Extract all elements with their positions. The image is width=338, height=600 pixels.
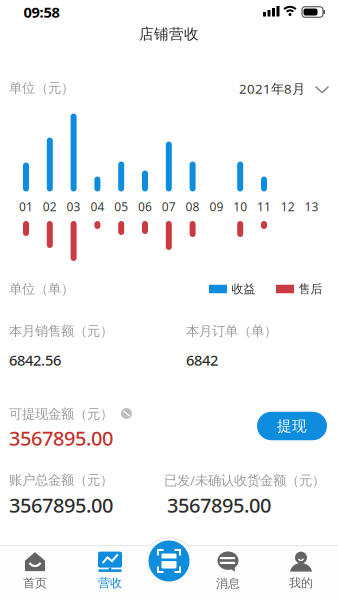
staticText: 6842	[186, 350, 218, 370]
staticText: 07	[162, 198, 176, 214]
staticText: 账户总金额（元）	[9, 472, 113, 488]
staticText: 本月订单（单）	[186, 323, 277, 339]
staticText: 可提现金额（元）	[9, 406, 113, 422]
staticText: 06	[138, 198, 152, 214]
staticText: 12	[281, 198, 295, 214]
staticText: 已发/未确认收货金额（元）	[164, 471, 325, 489]
staticText: 3567895.00	[167, 492, 271, 518]
button[interactable]: 首页	[5, 547, 65, 595]
button[interactable]: 2021年8月	[199, 80, 329, 97]
staticText: 09	[209, 198, 223, 214]
staticText: 本月销售额（元）	[9, 323, 113, 339]
button[interactable]: 消息	[198, 547, 258, 595]
button[interactable]: 我的	[271, 547, 331, 595]
staticText: 3567895.00	[9, 492, 113, 518]
button[interactable]: 隐藏金额	[121, 408, 132, 419]
staticText: 04	[90, 198, 104, 214]
staticText: 消息	[216, 576, 240, 591]
staticText: 首页	[23, 576, 47, 590]
staticText: 2021年8月	[239, 80, 305, 97]
staticText: 我的	[289, 576, 313, 590]
button[interactable]: 营收	[80, 547, 140, 595]
staticText: 单位（元）	[9, 80, 74, 96]
staticText: 单位（单）	[9, 281, 74, 297]
staticText: 02	[43, 198, 57, 214]
button[interactable]: 提现	[257, 412, 327, 440]
staticText: 03	[67, 198, 81, 214]
staticText: 11	[257, 198, 271, 214]
staticText: 05	[114, 198, 128, 214]
staticText: 售后	[298, 282, 322, 296]
staticText: 营收	[98, 576, 122, 590]
staticText: 09:58	[23, 2, 59, 22]
button[interactable]: 扫一扫	[148, 540, 189, 581]
staticText: 13	[305, 198, 319, 214]
staticText: 3567895.00	[9, 425, 113, 451]
staticText: 提现	[277, 417, 307, 435]
staticText: 店铺营收	[139, 25, 199, 43]
staticText: 08	[186, 198, 200, 214]
staticText: 6842.56	[9, 350, 61, 370]
staticText: 收益	[231, 282, 255, 296]
staticText: 10	[233, 198, 247, 214]
staticText: 01	[19, 198, 33, 214]
